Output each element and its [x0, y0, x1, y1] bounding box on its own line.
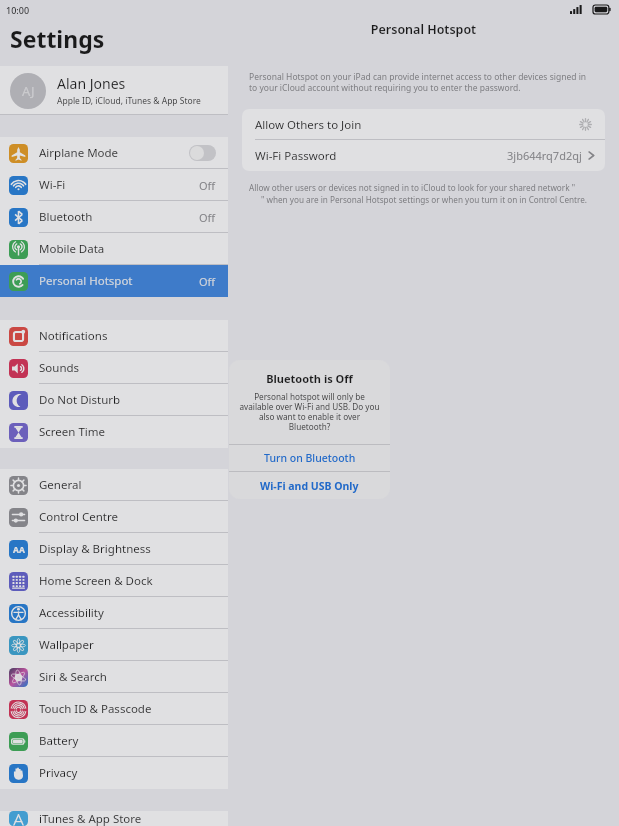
- staticText: AJ: [22, 82, 35, 100]
- staticText: Notifications: [39, 328, 216, 344]
- button[interactable]: AJ: [0, 66, 228, 115]
- staticText: Accessibility: [39, 605, 216, 621]
- button[interactable]: Mobile Data: [0, 233, 228, 265]
- staticText: General: [39, 477, 216, 493]
- staticText: Off: [199, 178, 216, 193]
- staticText: Personal Hotspot: [228, 21, 619, 38]
- staticText: Mobile Data: [39, 241, 216, 257]
- button[interactable]: Personal Hotspot: [0, 265, 228, 297]
- staticText: Screen Time: [39, 424, 216, 440]
- staticText: " when you are in Personal Hotspot setti…: [261, 194, 588, 205]
- staticText: Allow other users or devices not signed …: [249, 182, 576, 193]
- staticText: Privacy: [39, 765, 216, 781]
- staticText: Display & Brightness: [39, 541, 216, 557]
- staticText: Turn on Bluetooth: [264, 451, 356, 465]
- button[interactable]: Home Screen & Dock: [0, 565, 228, 597]
- staticText: Wi-Fi Password: [255, 148, 507, 164]
- staticText: Alan Jones: [57, 74, 126, 93]
- button[interactable]: Screen Time: [0, 416, 228, 448]
- staticText: 10:00: [6, 4, 30, 16]
- staticText: Battery: [39, 733, 216, 749]
- button[interactable]: Do Not Disturb: [0, 384, 228, 416]
- staticText: Bluetooth: [39, 209, 199, 225]
- button[interactable]: Wallpaper: [0, 629, 228, 661]
- button[interactable]: Privacy: [0, 757, 228, 789]
- staticText: Personal hotspot will only be available …: [238, 391, 381, 433]
- button[interactable]: AA: [0, 533, 228, 565]
- button[interactable]: Touch ID & Passcode: [0, 693, 228, 725]
- button[interactable]: Wi-Fi Password: [242, 140, 605, 171]
- staticText: AA: [13, 544, 25, 556]
- staticText: Apple ID, iCloud, iTunes & App Store: [57, 95, 201, 107]
- button[interactable]: Airplane Mode: [0, 137, 228, 169]
- staticText: iTunes & App Store: [39, 811, 216, 826]
- staticText: Do Not Disturb: [39, 392, 216, 408]
- staticText: Personal Hotspot: [39, 273, 199, 289]
- button[interactable]: Sounds: [0, 352, 228, 384]
- staticText: Personal Hotspot on your iPad can provid…: [249, 71, 595, 93]
- button[interactable]: General: [0, 469, 228, 501]
- button[interactable]: Bluetooth: [0, 201, 228, 233]
- button[interactable]: Wi-Fi and USB Only: [229, 472, 390, 499]
- other: Loading: [579, 118, 592, 131]
- staticText: Home Screen & Dock: [39, 573, 216, 589]
- staticText: 3jb644rq7d2qj: [507, 148, 582, 163]
- button[interactable]: Notifications: [0, 320, 228, 352]
- button[interactable]: Control Centre: [0, 501, 228, 533]
- staticText: Wi-Fi and USB Only: [260, 479, 359, 493]
- button[interactable]: Wi-Fi: [0, 169, 228, 201]
- staticText: Wi-Fi: [39, 177, 199, 193]
- staticText: Airplane Mode: [39, 145, 189, 161]
- button[interactable]: Accessibility: [0, 597, 228, 629]
- button[interactable]: iTunes & App Store: [0, 811, 228, 826]
- button[interactable]: Airplane Mode toggle: [189, 145, 216, 161]
- button[interactable]: Siri & Search: [0, 661, 228, 693]
- button[interactable]: Battery: [0, 725, 228, 757]
- staticText: Siri & Search: [39, 669, 216, 685]
- button[interactable]: Turn on Bluetooth: [229, 445, 390, 471]
- staticText: Control Centre: [39, 509, 216, 525]
- staticText: Wallpaper: [39, 637, 216, 653]
- button[interactable]: Allow Others to Join: [242, 109, 605, 140]
- staticText: Off: [199, 274, 216, 289]
- staticText: Sounds: [39, 360, 216, 376]
- staticText: Touch ID & Passcode: [39, 701, 216, 717]
- staticText: Bluetooth is Off: [229, 371, 390, 386]
- staticText: Allow Others to Join: [255, 117, 579, 133]
- staticText: Off: [199, 210, 216, 225]
- staticText: Settings: [10, 23, 105, 54]
